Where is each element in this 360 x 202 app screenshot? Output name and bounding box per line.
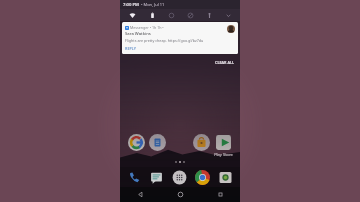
button[interactable]: Home [160,187,200,202]
button[interactable]: CLEAR ALL [214,59,235,66]
button[interactable]: Phone [123,167,145,187]
button[interactable]: All apps [168,167,191,187]
button[interactable]: Camera [214,167,237,187]
button[interactable]: Expand [219,9,238,21]
button[interactable]: Shopping [190,133,212,152]
button[interactable]: Flashlight [200,9,219,21]
button[interactable]: Play Store [212,133,234,158]
button[interactable]: REPLY [122,43,238,54]
button[interactable]: Wi-Fi [122,9,142,21]
button[interactable]: Back [120,187,160,202]
button[interactable]: Messages [145,167,168,187]
staticText: Play Store [214,152,233,157]
staticText: 7:00 PM [123,2,139,8]
button[interactable]: Recents [200,187,240,202]
staticText: Messenger • 1h 1h • [130,25,164,30]
button[interactable]: Chrome [191,167,214,187]
button[interactable]: Battery [142,9,162,21]
staticText: Sara Watkins [125,31,151,37]
button[interactable]: Google [126,133,147,152]
staticText: CLEAR ALL [215,60,234,65]
button[interactable]: Messenger • 1h 1h • [122,22,238,54]
button[interactable]: Rotate [162,9,181,21]
staticText: REPLY [125,46,136,51]
staticText: Flights are pretty cheap. https://goo.gl… [125,38,204,43]
button[interactable]: Docs [147,133,168,152]
staticText: • Mon, Jul 11 [141,2,165,7]
button[interactable]: Do not disturb [181,9,200,21]
